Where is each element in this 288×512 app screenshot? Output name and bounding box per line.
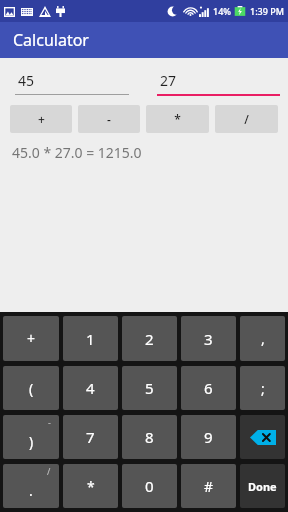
staticText: 45.0 * 27.0 = 1215.0: [12, 143, 142, 162]
staticText: 2: [145, 329, 154, 349]
staticText: .: [29, 481, 33, 500]
button[interactable]: 5: [122, 366, 177, 410]
button[interactable]: ): [3, 415, 59, 459]
button[interactable]: Backspace: [240, 415, 285, 459]
staticText: +: [38, 111, 45, 127]
button[interactable]: Done: [240, 464, 285, 508]
staticText: 8: [145, 427, 154, 447]
staticText: +: [27, 329, 36, 348]
staticText: Calculator: [13, 29, 89, 51]
staticText: 45: [18, 71, 35, 90]
staticText: 3: [204, 329, 213, 349]
staticText: 4: [86, 378, 95, 398]
button[interactable]: 9: [181, 415, 236, 459]
staticText: 14%: [213, 5, 231, 17]
staticText: -: [107, 111, 111, 127]
staticText: *: [87, 477, 95, 496]
button[interactable]: *: [63, 464, 118, 508]
staticText: 27: [160, 71, 177, 90]
staticText: (: [29, 379, 34, 398]
button[interactable]: 6: [181, 366, 236, 410]
staticText: 5: [145, 378, 154, 398]
staticText: /: [244, 111, 249, 127]
staticText: Done: [248, 479, 277, 494]
button[interactable]: *: [146, 105, 209, 133]
button[interactable]: -: [78, 105, 140, 133]
staticText: 7: [86, 427, 95, 447]
staticText: 9: [204, 427, 213, 447]
button[interactable]: 0: [122, 464, 177, 508]
button[interactable]: .: [3, 464, 59, 508]
staticText: *: [174, 111, 181, 127]
staticText: /: [47, 465, 51, 477]
button[interactable]: +: [10, 105, 72, 133]
button[interactable]: ;: [240, 366, 285, 410]
button[interactable]: #: [181, 464, 236, 508]
button[interactable]: 2: [122, 316, 177, 361]
button[interactable]: 4: [63, 366, 118, 410]
staticText: -: [48, 416, 51, 428]
button[interactable]: ,: [240, 316, 285, 361]
staticText: ,: [261, 329, 265, 348]
button[interactable]: (: [3, 366, 59, 410]
staticText: ;: [261, 379, 265, 398]
staticText: #: [204, 477, 214, 496]
staticText: 1: [86, 329, 95, 349]
button[interactable]: +: [3, 316, 59, 361]
staticText: 1:39 PM: [250, 5, 284, 17]
staticText: 0: [145, 476, 154, 496]
button[interactable]: 7: [63, 415, 118, 459]
button[interactable]: 45: [15, 71, 129, 95]
staticText: ): [29, 432, 34, 451]
staticText: 6: [204, 378, 213, 398]
button[interactable]: 8: [122, 415, 177, 459]
button[interactable]: 3: [181, 316, 236, 361]
button[interactable]: 27: [157, 71, 280, 96]
button[interactable]: 1: [63, 316, 118, 361]
button[interactable]: /: [215, 105, 278, 133]
